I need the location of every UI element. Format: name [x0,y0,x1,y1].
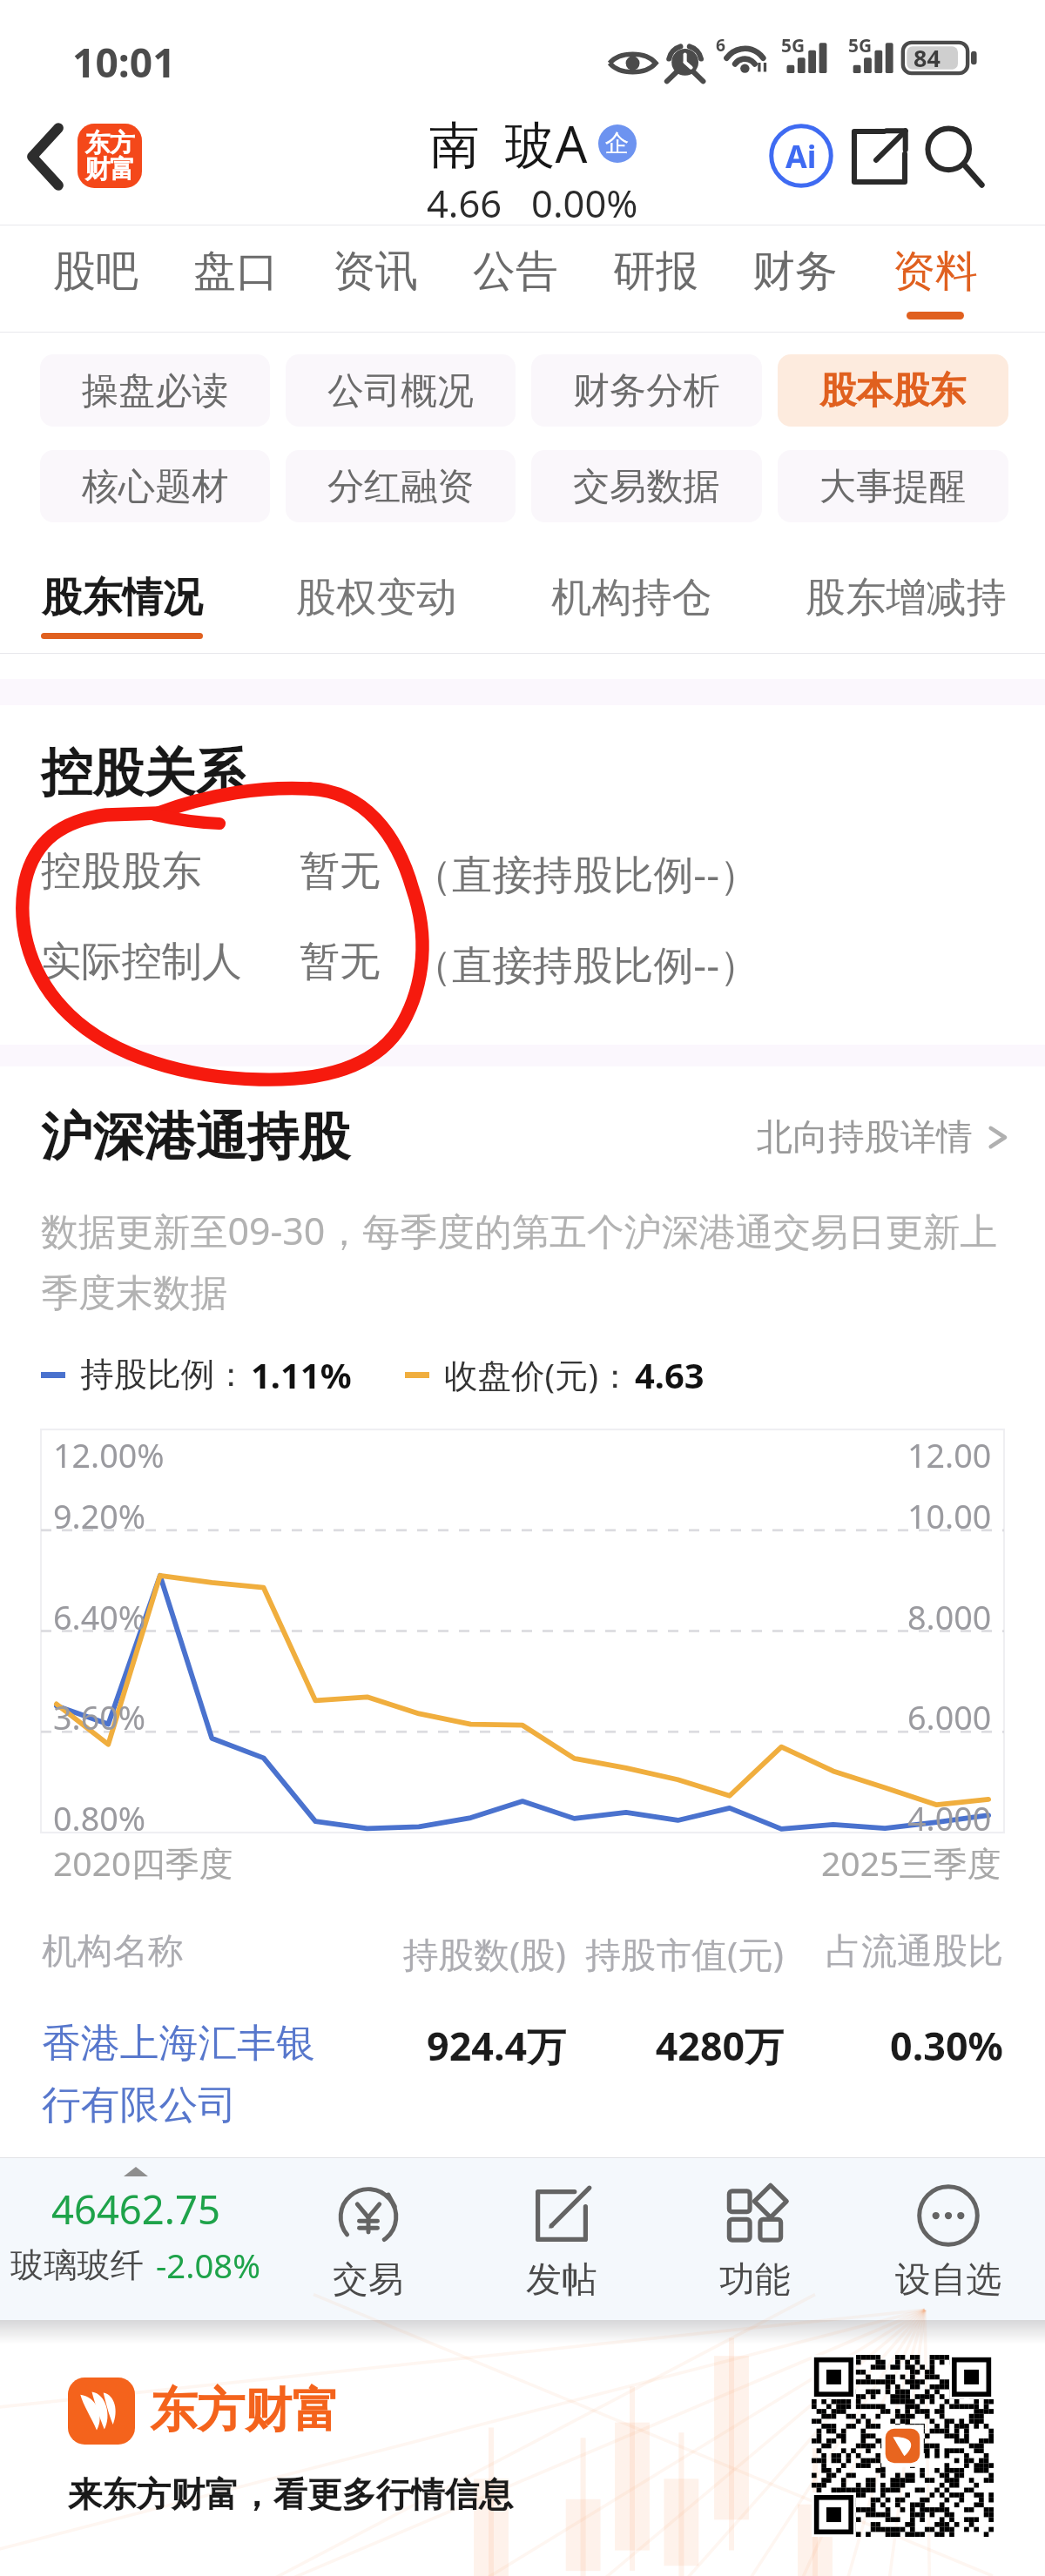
staticText: 9.20% [53,1494,146,1538]
staticText: 股东增减持 [806,573,1007,623]
staticText: 4.66 0.00% [427,178,638,229]
staticText: （直接持股比例--） [412,846,760,901]
staticText: 收盘价(元)： [444,1352,632,1398]
button[interactable]: 资料 [883,225,988,319]
staticText: 10:01 [72,35,176,90]
staticText: 南 玻A [429,109,588,178]
button[interactable]: 操盘必读 [40,354,270,427]
button[interactable]: 财务分析 [531,354,762,427]
staticText: 玻璃玻纤 [10,2244,144,2286]
staticText: 操盘必读 [82,367,229,414]
staticText: 公告 [473,245,558,299]
button[interactable]: East Money home [78,124,142,188]
staticText: 财务分析 [573,367,720,414]
staticText: 控股关系 [41,741,247,805]
staticText: 来东方财富，看更多行情信息 [68,2473,514,2517]
staticText: 1.11% [251,1351,352,1398]
staticText: 10.00 [907,1494,992,1538]
staticText: 3.60% [53,1695,146,1739]
staticText: 0.30% [784,2019,1003,2072]
staticText: 东方 财富 [84,127,135,185]
staticText: 4.63 [635,1351,705,1398]
staticText: 8.000 [907,1595,992,1639]
button[interactable]: 资讯 [323,225,428,319]
staticText: 持股比例： [80,1354,248,1396]
button[interactable]: 股东增减持 [805,522,1007,639]
button[interactable]: 股东情况 [41,522,203,639]
button[interactable]: 设自选 [852,2157,1045,2302]
staticText: 4280万 [566,2019,784,2072]
button[interactable]: 发帖 [465,2157,658,2302]
staticText: 占流通股比 [784,1929,1003,1974]
staticText: 924.4万 [348,2019,566,2072]
button[interactable]: 46462.75 [0,2157,271,2288]
staticText: 暂无 [300,846,395,897]
staticText: 84 [914,42,940,74]
staticText: 控股股东 [41,846,300,897]
staticText: 6.000 [907,1695,992,1739]
staticText: 北向持股详情 [757,1114,973,1160]
staticText: 暂无 [300,937,395,987]
button[interactable]: 大事提醒 [778,450,1008,522]
staticText: 东方财富 [150,2381,340,2441]
button[interactable]: 股权变动 [295,522,457,639]
button[interactable]: AI assistant [760,115,842,197]
staticText: 6.40% [53,1595,146,1639]
button[interactable]: Search [916,119,990,193]
staticText: 0.80% [53,1796,146,1840]
staticText: 股吧 [53,245,138,299]
staticText: 4.000 [907,1796,992,1840]
staticText: 12.00 [907,1433,992,1477]
staticText: 2020四季度 [53,1840,233,1886]
staticText: 企 [605,129,630,159]
button[interactable]: 交易数据 [531,450,762,522]
button[interactable]: 北向持股详情 [757,1114,1009,1160]
staticText: 公司概况 [327,367,475,414]
button[interactable]: Back [9,120,81,192]
staticText: 盘口 [193,245,279,299]
button[interactable]: 股吧 [44,225,148,319]
button[interactable]: 交易 [271,2157,465,2302]
button[interactable]: 财务 [743,225,847,319]
staticText: 研报 [613,245,698,299]
staticText: 大事提醒 [819,463,967,509]
staticText: 5G [781,33,806,57]
staticText: 12.00% [53,1433,165,1477]
staticText: 核心题材 [82,463,229,509]
staticText: 实际控制人 [41,937,300,987]
staticText: 机构持仓 [551,573,712,623]
staticText: 资料 [893,245,978,299]
staticText: 交易 [333,2257,404,2302]
button[interactable]: 机构持仓 [550,522,712,639]
staticText: 46462.75 [51,2182,220,2236]
staticText: 机构名称 [42,1929,348,1974]
button[interactable]: 研报 [603,225,708,319]
button[interactable]: 盘口 [184,225,288,319]
button[interactable]: 公司概况 [286,354,516,427]
staticText: -2.08% [156,2243,260,2288]
button[interactable]: 股本股东 [778,354,1008,427]
staticText: 分红融资 [327,463,475,509]
button[interactable]: 核心题材 [40,450,270,522]
staticText: 数据更新至09-30，每季度的第五个沪深港通交易日更新上季度末数据 [41,1205,1033,1317]
staticText: 持股数(股) [348,1929,566,1978]
button[interactable]: 公告 [463,225,568,319]
staticText: 6 [716,33,726,56]
staticText: （直接持股比例--） [412,937,760,992]
staticText: 资讯 [333,245,418,299]
staticText: 股本股东 [819,367,967,414]
staticText: 香港上海汇丰银行有限公司 [42,2019,348,2130]
button[interactable]: Share [842,119,916,193]
staticText: 设自选 [895,2257,1002,2302]
staticText: 交易数据 [573,463,720,509]
staticText: 股东情况 [42,573,203,623]
button[interactable]: 分红融资 [286,450,516,522]
button[interactable]: 功能 [658,2157,852,2302]
staticText: 沪深港通持股 [41,1105,350,1169]
staticText: Ai [785,135,817,178]
staticText: 5G [848,33,873,57]
staticText: 财务 [752,245,838,299]
staticText: 2025三季度 [821,1840,1001,1886]
staticText: 股权变动 [296,573,457,623]
staticText: 持股市值(元) [566,1929,784,1978]
